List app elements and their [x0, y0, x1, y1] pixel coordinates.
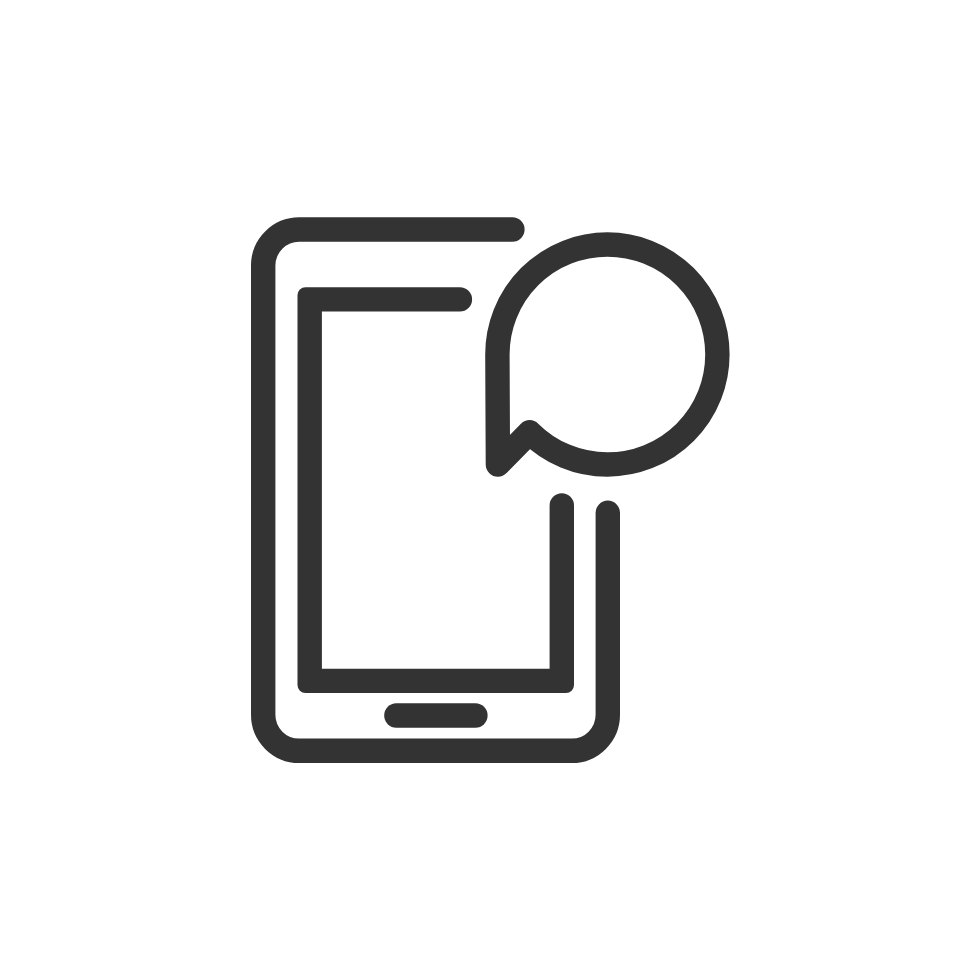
button[interactable]: Mobile chat message [0, 0, 980, 980]
